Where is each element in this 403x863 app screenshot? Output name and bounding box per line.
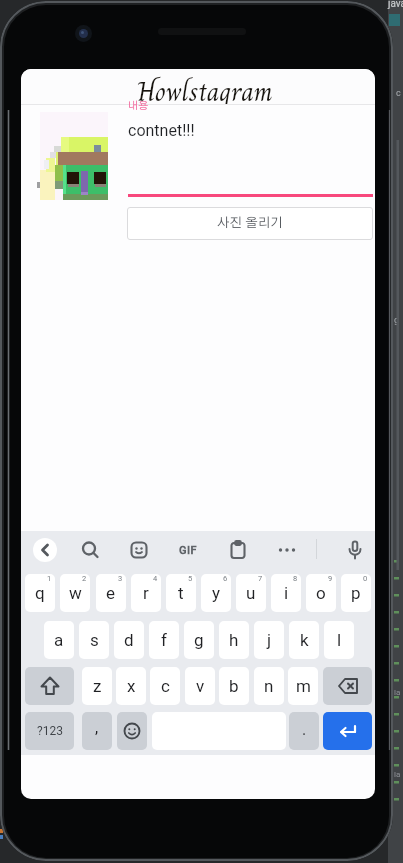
staticText: i (284, 583, 289, 603)
staticText: 3 (118, 574, 123, 583)
staticText: c (396, 88, 401, 99)
button[interactable]: t (166, 574, 196, 612)
button[interactable]: x (116, 667, 146, 705)
button[interactable] (127, 538, 151, 562)
button[interactable]: j (254, 621, 284, 659)
button[interactable] (323, 667, 372, 705)
button[interactable] (33, 538, 57, 562)
button[interactable] (25, 667, 74, 705)
staticText: 2 (82, 574, 87, 583)
button[interactable]: w (60, 574, 90, 612)
button[interactable]: s (79, 621, 109, 659)
staticText: c (161, 676, 170, 696)
button[interactable]: v (185, 667, 215, 705)
button[interactable]: z (82, 667, 112, 705)
staticText: e (106, 583, 116, 603)
button[interactable] (117, 712, 147, 750)
staticText: f (161, 630, 167, 650)
staticText: s (90, 630, 99, 650)
button[interactable]: . (289, 712, 319, 750)
button[interactable]: r (131, 574, 161, 612)
staticText: g (394, 315, 400, 326)
staticText: u (246, 583, 256, 603)
staticText: o (316, 583, 326, 603)
button[interactable]: m (288, 667, 318, 705)
button[interactable] (226, 538, 250, 562)
button[interactable]: e (96, 574, 126, 612)
staticText: m (296, 676, 311, 696)
button[interactable] (275, 538, 299, 562)
button[interactable] (40, 112, 108, 200)
staticText: z (93, 676, 102, 696)
button[interactable] (78, 538, 102, 562)
staticText: n (264, 676, 274, 696)
staticText: ?123 (37, 724, 63, 738)
button[interactable]: l (324, 621, 354, 659)
button[interactable]: f (149, 621, 179, 659)
button[interactable]: k (289, 621, 319, 659)
button[interactable]: ?123 (25, 712, 74, 750)
staticText: 5 (188, 574, 193, 583)
staticText: Howlstagram (137, 70, 273, 105)
staticText: 사진 올리기 (217, 217, 283, 230)
staticText: la (394, 688, 401, 697)
button[interactable]: GIF (174, 538, 202, 562)
staticText: 6 (223, 574, 228, 583)
button[interactable]: d (114, 621, 144, 659)
button[interactable]: c (150, 667, 180, 705)
staticText: v (196, 676, 205, 696)
button[interactable]: i (271, 574, 301, 612)
staticText: , (95, 718, 99, 737)
staticText: d (124, 630, 134, 650)
staticText: a (54, 630, 64, 650)
button[interactable]: g (184, 621, 214, 659)
button[interactable]: o (306, 574, 336, 612)
staticText: p (351, 583, 361, 603)
staticText: 4 (153, 574, 158, 583)
button[interactable] (343, 538, 367, 562)
button[interactable]: y (201, 574, 231, 612)
button[interactable]: a (44, 621, 74, 659)
staticText: 8 (293, 574, 298, 583)
staticText: GIF (179, 544, 198, 557)
staticText: 9 (328, 574, 333, 583)
button[interactable]: q (25, 574, 55, 612)
staticText: 7 (258, 574, 263, 583)
staticText: q (35, 583, 45, 603)
staticText: r (143, 583, 149, 603)
staticText: w (69, 583, 82, 603)
staticText: b (229, 676, 239, 696)
staticText: 1 (47, 574, 52, 583)
button[interactable]: , (82, 712, 112, 750)
staticText: h (229, 630, 239, 650)
staticText: l (337, 630, 342, 650)
staticText: k (300, 630, 309, 650)
button[interactable]: h (219, 621, 249, 659)
staticText: contnet!!! (128, 121, 195, 140)
staticText: 0 (363, 574, 368, 583)
staticText: x (127, 676, 136, 696)
staticText: t (178, 583, 184, 603)
staticText: j (267, 630, 272, 650)
staticText: . (302, 720, 307, 739)
staticText: la (394, 770, 401, 779)
button[interactable]: n (254, 667, 284, 705)
staticText: y (212, 583, 221, 603)
button[interactable]: p (341, 574, 371, 612)
button[interactable]: b (219, 667, 249, 705)
staticText: java (388, 0, 403, 10)
button[interactable] (323, 712, 372, 750)
button[interactable]: 사진 올리기 (127, 207, 373, 240)
staticText: g (194, 630, 204, 650)
button[interactable]: u (236, 574, 266, 612)
staticText: 내용 (128, 101, 149, 112)
